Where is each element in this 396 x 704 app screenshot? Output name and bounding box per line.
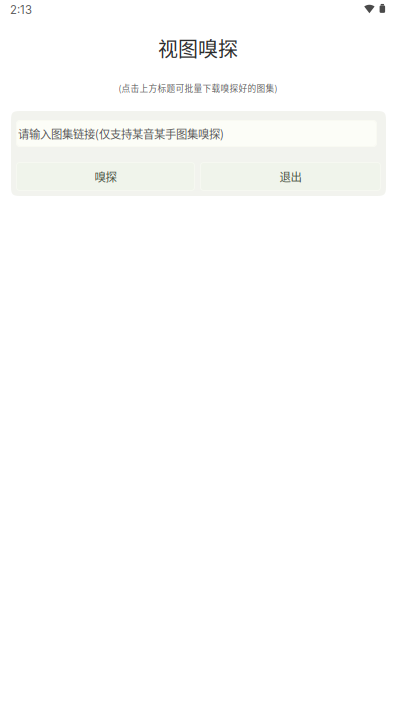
staticText: (点击上方标题可批量下载嗅探好的图集) (118, 82, 277, 94)
button[interactable]: 退出 (200, 162, 381, 191)
staticText: 请输入图集链接(仅支持某音某手图集嗅探) (18, 125, 224, 142)
button[interactable]: 视图嗅探 (0, 37, 396, 59)
button[interactable]: 请输入图集链接(仅支持某音某手图集嗅探) (16, 120, 377, 147)
button[interactable]: 嗅探 (16, 162, 195, 191)
staticText: 退出 (279, 168, 301, 185)
staticText: 视图嗅探 (158, 33, 238, 62)
staticText: 嗅探 (94, 168, 116, 185)
staticText: 2:13 (10, 3, 32, 17)
